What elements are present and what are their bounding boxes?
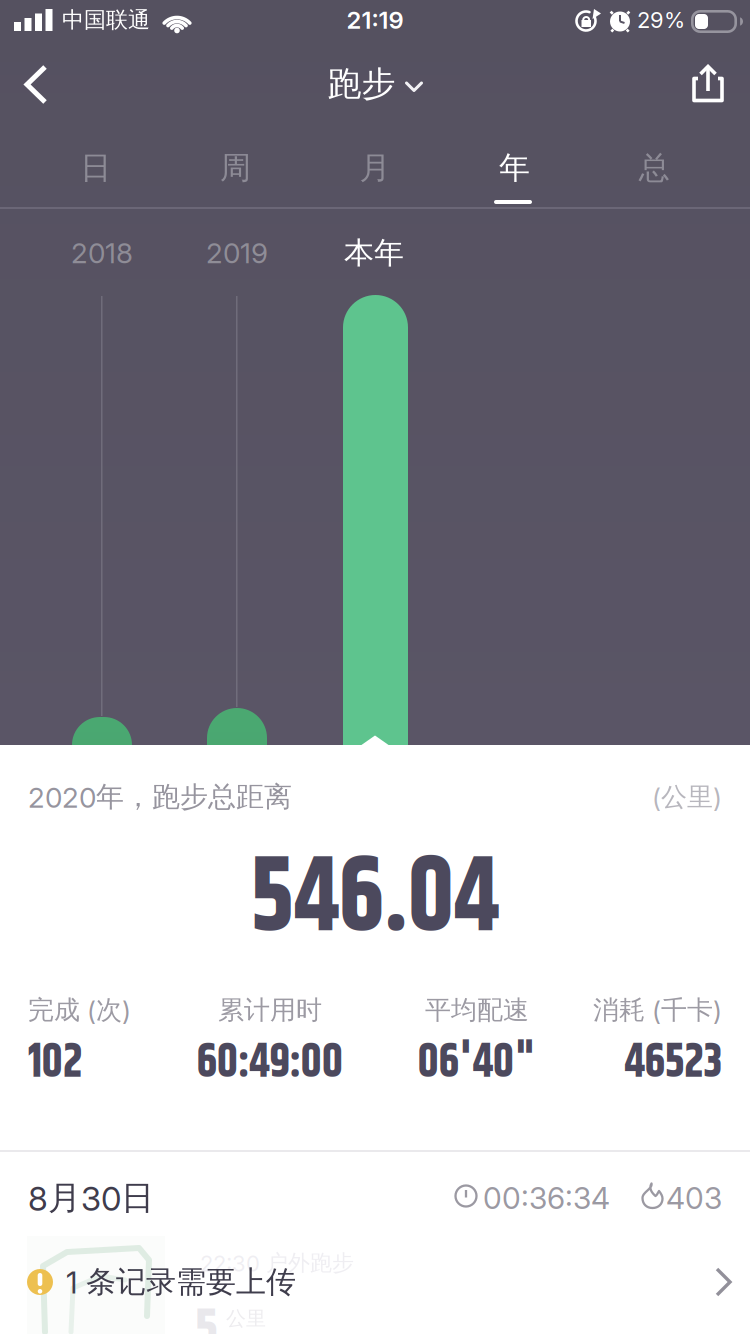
button[interactable]: 1 条记录需要上传 xyxy=(0,1242,750,1322)
staticText: 年 xyxy=(499,148,530,188)
button[interactable]: 日 xyxy=(26,130,166,206)
staticText: 跑步 xyxy=(327,63,395,105)
staticText: 5 xyxy=(195,1290,218,1334)
staticText: 46523 xyxy=(616,1026,722,1100)
staticText: 1 条记录需要上传 xyxy=(66,1263,296,1301)
staticText: 完成 (次) xyxy=(28,994,131,1026)
staticText: 本年 xyxy=(344,234,404,272)
staticText: 21:19 xyxy=(346,5,403,34)
staticText: 公里 xyxy=(226,1306,266,1331)
button[interactable] xyxy=(8,52,72,116)
button[interactable] xyxy=(672,50,742,118)
staticText: 平均配速 xyxy=(425,994,529,1026)
staticText: 日 xyxy=(80,148,111,188)
staticText: 消耗 (千卡) xyxy=(593,994,722,1026)
staticText: 总 xyxy=(639,148,670,188)
staticText: 00:36:34 xyxy=(483,1180,610,1216)
staticText: 546.04 xyxy=(240,819,510,981)
staticText: 2019 xyxy=(206,236,268,270)
button[interactable]: 跑步 xyxy=(327,54,422,114)
staticText: 102 xyxy=(28,1026,87,1100)
button[interactable]: 年 xyxy=(445,130,584,206)
staticText: 06'40" xyxy=(412,1026,541,1100)
staticText: 2018 xyxy=(71,236,133,270)
staticText: (公里) xyxy=(652,781,722,813)
staticText: 22:30 户外跑步 xyxy=(200,1249,354,1277)
staticText: 8月30日 xyxy=(28,1177,154,1219)
staticText: 60:49:00 xyxy=(190,1026,349,1100)
button[interactable]: 周 xyxy=(166,130,305,206)
staticText: 月 xyxy=(359,148,390,188)
staticText: 403 xyxy=(666,1180,722,1216)
staticText: 中国联通 xyxy=(62,6,150,34)
button[interactable]: 月 xyxy=(305,130,445,206)
staticText: 周 xyxy=(220,148,251,188)
staticText: 2020年，跑步总距离 xyxy=(28,779,292,815)
button[interactable]: 总 xyxy=(584,130,724,206)
staticText: 累计用时 xyxy=(218,994,322,1026)
staticText: 29% xyxy=(637,7,685,33)
